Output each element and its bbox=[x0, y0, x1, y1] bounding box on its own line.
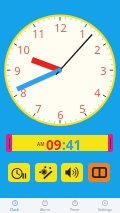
staticText: 09 bbox=[46, 136, 62, 154]
staticText: 5 bbox=[79, 101, 86, 115]
staticText: 3 bbox=[100, 63, 107, 77]
button[interactable]: Layout bbox=[88, 163, 110, 182]
staticText: Alarm bbox=[40, 207, 51, 212]
staticText: 9 bbox=[14, 63, 21, 77]
button[interactable]: Sound bbox=[61, 163, 83, 182]
button[interactable]: Clock bbox=[0, 198, 30, 213]
staticText: 1 bbox=[79, 26, 86, 40]
staticText: Settings bbox=[98, 207, 112, 212]
staticText: 11 bbox=[32, 26, 45, 40]
staticText: 8 bbox=[20, 85, 27, 99]
button[interactable]: Alarm bbox=[30, 198, 60, 213]
staticText: 6 bbox=[57, 107, 64, 121]
staticText: Clock bbox=[10, 207, 20, 212]
staticText: 4 bbox=[94, 85, 101, 99]
staticText: 10 bbox=[17, 42, 30, 56]
staticText: 7 bbox=[35, 101, 42, 115]
staticText: 2 bbox=[94, 42, 101, 56]
button[interactable]: Magic bbox=[35, 163, 57, 182]
button[interactable]: Settings bbox=[90, 198, 120, 213]
staticText: :41 bbox=[62, 136, 82, 154]
staticText: 12 bbox=[54, 20, 67, 34]
button[interactable]: Timer bbox=[60, 198, 90, 213]
button[interactable] bbox=[12, 135, 108, 151]
staticText: Timer bbox=[70, 207, 80, 212]
button[interactable]: Timer bbox=[8, 163, 30, 182]
staticText: AM bbox=[37, 141, 45, 147]
